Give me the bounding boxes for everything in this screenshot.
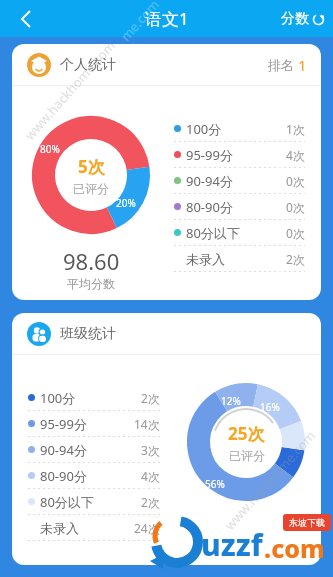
button[interactable]: 90-94分: [28, 437, 160, 462]
staticText: 98.60: [63, 246, 120, 276]
staticText: www.hackhome.com: [20, 36, 119, 144]
button[interactable]: 80-90分: [174, 194, 305, 219]
button[interactable]: 80分以下: [28, 489, 160, 514]
staticText: 4次: [286, 147, 305, 163]
staticText: 90-94分: [40, 441, 87, 459]
staticText: 90-94分: [186, 172, 233, 190]
staticText: 56%: [205, 477, 225, 491]
staticText: 25次: [228, 422, 265, 445]
staticText: 未录入: [40, 520, 79, 536]
staticText: 14次: [134, 416, 160, 432]
staticText: me.com: [117, 0, 163, 45]
staticText: 班级统计: [60, 325, 116, 343]
staticText: 80-90分: [186, 198, 233, 216]
button[interactable]: 95-99分: [28, 411, 160, 436]
staticText: 5次: [78, 155, 105, 178]
staticText: 0次: [286, 199, 305, 215]
staticText: 100分: [186, 120, 222, 138]
staticText: 已评分: [229, 448, 265, 463]
staticText: 100分: [40, 389, 76, 407]
button[interactable]: 100分: [174, 116, 305, 141]
staticText: 平均分数: [67, 276, 115, 291]
staticText: 1: [298, 55, 307, 75]
staticText: 分数: [281, 10, 309, 28]
staticText: 16%: [260, 400, 280, 414]
button[interactable]: 95-99分: [174, 142, 305, 167]
staticText: 4次: [141, 468, 160, 484]
staticText: 20%: [116, 196, 136, 210]
staticText: 80分以下: [186, 224, 240, 242]
staticText: 80%: [40, 142, 60, 156]
staticText: 2次: [141, 390, 160, 406]
staticText: 12%: [221, 394, 241, 408]
staticText: 已评分: [73, 181, 109, 196]
staticText: .com: [264, 531, 325, 565]
button[interactable]: 分数: [281, 10, 325, 28]
staticText: 95-99分: [186, 146, 233, 164]
staticText: 未录入: [186, 251, 225, 267]
staticText: 3次: [141, 442, 160, 458]
staticText: 80分以下: [40, 493, 94, 511]
staticText: 东坡下载: [289, 517, 325, 528]
button[interactable]: 80分以下: [174, 220, 305, 245]
button[interactable]: 100分: [28, 385, 160, 410]
staticText: 1次: [286, 121, 305, 137]
staticText: 0次: [286, 225, 305, 241]
staticText: 排名: [268, 56, 298, 74]
staticText: 个人统计: [60, 56, 116, 74]
staticText: www.hackhome.com: [220, 426, 319, 534]
staticText: uzzf: [201, 524, 263, 565]
staticText: 0次: [286, 173, 305, 189]
staticText: 2次: [286, 251, 305, 267]
staticText: 95-99分: [40, 415, 87, 433]
button[interactable]: 未录入: [28, 515, 160, 540]
staticText: 语文1: [145, 7, 189, 30]
staticText: 24次: [134, 520, 160, 536]
staticText: 2次: [141, 494, 160, 510]
button[interactable]: [0, 0, 52, 37]
button[interactable]: 80-90分: [28, 463, 160, 488]
button[interactable]: 90-94分: [174, 168, 305, 193]
button[interactable]: 未录入: [174, 246, 305, 271]
staticText: 80-90分: [40, 467, 87, 485]
